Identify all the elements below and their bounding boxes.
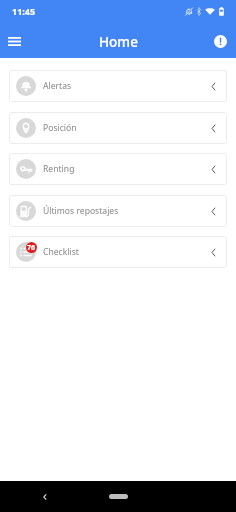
button[interactable]: Checklist xyxy=(9,236,227,268)
button[interactable]: Open navigation menu xyxy=(0,27,28,55)
staticText: 76 xyxy=(27,243,36,253)
staticText: Home xyxy=(99,33,138,51)
button[interactable]: Home xyxy=(109,494,128,499)
button[interactable]: Renting xyxy=(9,153,227,185)
staticText: 11:45 xyxy=(12,5,36,17)
staticText: Últimos repostajes xyxy=(43,205,119,217)
staticText: Checklist xyxy=(43,246,79,258)
button[interactable]: Back xyxy=(36,488,54,506)
staticText: Alertas xyxy=(43,80,72,92)
button[interactable]: Information xyxy=(212,33,228,49)
staticText: Renting xyxy=(43,163,75,175)
button[interactable]: Últimos repostajes xyxy=(9,195,227,227)
button[interactable]: Posición xyxy=(9,112,227,144)
staticText: Posición xyxy=(43,122,77,134)
button[interactable]: Alertas xyxy=(9,70,227,102)
